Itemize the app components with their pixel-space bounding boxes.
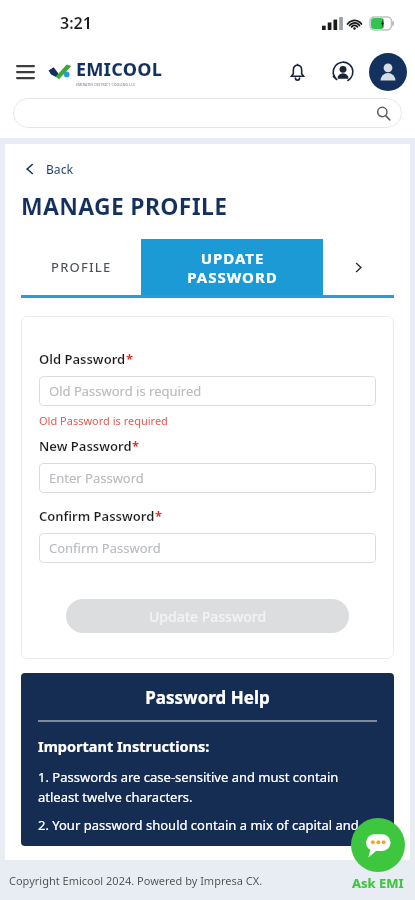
- staticText: EMIRATES DISTRICT COOLING LLC: [76, 82, 136, 87]
- button[interactable]: Ask EMI chat: [351, 818, 405, 872]
- button[interactable]: [13, 98, 402, 128]
- staticText: Confirm Password: [39, 507, 155, 525]
- staticText: PROFILE: [51, 258, 112, 276]
- button[interactable]: Notifications: [279, 54, 315, 90]
- staticText: *: [155, 507, 163, 525]
- button[interactable]: Back: [19, 158, 78, 180]
- staticText: 1. Passwords are case-sensitive and must…: [38, 768, 377, 806]
- staticText: 3:21: [60, 12, 92, 34]
- button[interactable]: Confirm Password: [39, 533, 376, 563]
- staticText: *: [126, 350, 134, 368]
- staticText: New Password: [39, 437, 132, 455]
- button[interactable]: More tabs: [323, 239, 394, 295]
- staticText: Enter Password: [49, 469, 144, 487]
- staticText: MANAGE PROFILE: [21, 190, 228, 221]
- staticText: Update Password: [149, 607, 267, 626]
- button[interactable]: UPDATE PASSWORD: [141, 239, 323, 295]
- staticText: Old Password is required: [39, 413, 168, 428]
- staticText: Back: [46, 161, 74, 177]
- button[interactable]: PROFILE: [21, 239, 141, 295]
- staticText: Password Help: [38, 686, 377, 709]
- staticText: 2. Your password should contain a mix of…: [38, 816, 359, 834]
- button[interactable]: Enter Password: [39, 463, 376, 493]
- button[interactable]: Profile: [369, 53, 407, 91]
- button[interactable]: Support: [325, 54, 361, 90]
- staticText: *: [132, 437, 140, 455]
- button[interactable]: Old Password is required: [39, 376, 376, 406]
- button[interactable]: Menu: [8, 55, 42, 89]
- staticText: Copyright Emicool 2024. Powered by Impre…: [9, 873, 263, 888]
- staticText: Confirm Password: [49, 539, 161, 557]
- staticText: Important Instructions:: [38, 736, 210, 756]
- staticText: EMICOOL: [76, 57, 163, 82]
- staticText: Ask EMI: [352, 874, 404, 892]
- staticText: Old Password is required: [49, 382, 202, 400]
- staticText: UPDATE PASSWORD: [187, 248, 278, 287]
- button[interactable]: Update Password: [66, 599, 349, 633]
- staticText: Old Password: [39, 350, 126, 368]
